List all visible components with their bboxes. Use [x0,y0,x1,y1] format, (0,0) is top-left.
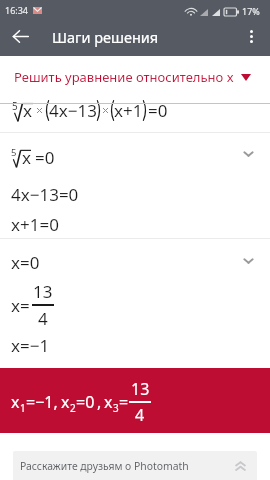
staticText: 17% [242,5,260,17]
staticText: Решить уравнение относительно x [14,68,234,86]
staticText: 3 [113,401,119,415]
staticText: 5 [12,99,18,112]
staticText: 4 [135,404,145,426]
staticText: =0 [35,146,55,169]
staticText: 4x−13=0 [11,183,79,206]
button[interactable]: Back [2,18,38,54]
staticText: x+1=0 [11,213,59,236]
staticText: x [61,391,70,413]
staticText: 5 [11,146,17,159]
staticText: 13 [131,378,150,400]
button[interactable]: 5 [0,132,270,238]
staticText: 16:34 [5,4,29,16]
staticText: Шаги решения [52,27,159,47]
staticText: x [22,146,31,169]
staticText: x [11,391,20,413]
staticText: =−1, [26,391,61,413]
staticText: =0 , [76,391,104,413]
staticText: 1 [20,401,26,415]
staticText: x+1 [114,99,143,122]
button[interactable]: Расскажите друзьям о Photomath [13,451,257,480]
button[interactable]: More options [233,18,269,54]
staticText: 4 [38,307,48,330]
staticText: x [104,391,113,413]
staticText: = [119,391,129,413]
button[interactable]: x=0 [0,239,270,364]
staticText: =0 [148,99,168,122]
staticText: Расскажите друзьям о Photomath [20,459,189,473]
staticText: 13 [33,280,53,303]
staticText: x= [11,294,30,317]
staticText: 2 [70,401,76,415]
staticText: x=0 [11,251,40,274]
staticText: 4x−13 [49,99,97,122]
button[interactable]: Решить уравнение относительно x [0,60,270,94]
staticText: x=−1 [11,334,50,357]
staticText: x [23,99,32,122]
